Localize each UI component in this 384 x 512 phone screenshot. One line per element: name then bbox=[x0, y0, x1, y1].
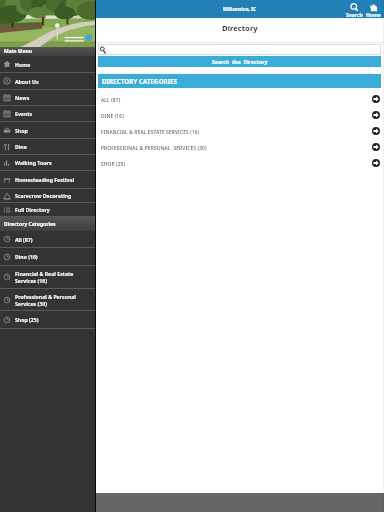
staticText: Scarecrow Decorating bbox=[15, 192, 72, 199]
button[interactable]: DINE (16) bbox=[98, 107, 381, 123]
staticText: FINANCIAL & REAL ESTATE SERVICES (16) bbox=[101, 129, 372, 136]
staticText: Shop (25) bbox=[15, 316, 39, 323]
staticText: Search bbox=[346, 12, 363, 17]
staticText: All (87) bbox=[15, 236, 33, 243]
button[interactable]: SHOP (25) bbox=[98, 155, 381, 171]
staticText: Main Menu bbox=[4, 48, 32, 55]
button[interactable]: Dine bbox=[0, 139, 95, 154]
staticText: Home bbox=[15, 61, 31, 68]
button[interactable]: Directory Categories bbox=[0, 217, 95, 231]
button[interactable]: News bbox=[0, 90, 95, 105]
staticText: About Us bbox=[15, 78, 39, 85]
button[interactable]: Homesteading Festival bbox=[0, 171, 95, 188]
button[interactable]: Home bbox=[0, 56, 95, 72]
staticText: DIRECTORY CATEGORIES bbox=[102, 77, 178, 86]
staticText: Williamston, SC bbox=[223, 6, 257, 12]
button[interactable]: All (87) bbox=[0, 231, 95, 247]
staticText: Financial & Real Estate Services (16) bbox=[15, 270, 74, 284]
button[interactable]: ALL (87) bbox=[98, 91, 381, 107]
staticText: SHOP (25) bbox=[101, 161, 372, 168]
staticText: Home bbox=[366, 12, 381, 17]
staticText: Search the Directory bbox=[212, 58, 268, 65]
staticText: Professional & Personal Services (30) bbox=[15, 293, 76, 307]
staticText: Walking Tours bbox=[15, 159, 52, 166]
button[interactable]: Walking Tours bbox=[0, 155, 95, 170]
button[interactable]: Search the Directory bbox=[98, 56, 381, 67]
button[interactable]: PROFESSIONAL & PERSONAL SERVICES (30) bbox=[98, 139, 381, 155]
staticText: Directory Categories bbox=[4, 221, 56, 228]
button[interactable]: Dine (16) bbox=[0, 248, 95, 265]
staticText: Dine (16) bbox=[15, 253, 38, 260]
button[interactable]: Professional & Personal Services (30) bbox=[0, 289, 95, 310]
button[interactable]: Home bbox=[365, 0, 382, 18]
staticText: ALL (87) bbox=[101, 97, 372, 104]
button[interactable]: Scarecrow Decorating bbox=[0, 189, 95, 202]
button[interactable]: Search bbox=[345, 0, 364, 18]
button[interactable]: Full Directory bbox=[0, 203, 95, 216]
staticText: DINE (16) bbox=[101, 113, 372, 120]
button[interactable]: Events bbox=[0, 106, 95, 121]
button[interactable]: Search field bbox=[98, 44, 381, 55]
staticText: Directory bbox=[222, 23, 258, 33]
button[interactable]: Shop bbox=[0, 122, 95, 138]
staticText: PROFESSIONAL & PERSONAL SERVICES (30) bbox=[101, 145, 372, 152]
staticText: Shop bbox=[15, 127, 28, 134]
staticText: Events bbox=[15, 110, 33, 117]
button[interactable]: Main Menu bbox=[0, 47, 95, 56]
button[interactable]: About Us bbox=[0, 73, 95, 89]
button[interactable]: FINANCIAL & REAL ESTATE SERVICES (16) bbox=[98, 123, 381, 139]
staticText: Full Directory bbox=[15, 206, 50, 213]
staticText: News bbox=[15, 94, 30, 101]
staticText: Homesteading Festival bbox=[15, 176, 75, 183]
button[interactable]: Shop (25) bbox=[0, 311, 95, 328]
staticText: Dine bbox=[15, 143, 27, 150]
button[interactable]: Financial & Real Estate Services (16) bbox=[0, 266, 95, 288]
